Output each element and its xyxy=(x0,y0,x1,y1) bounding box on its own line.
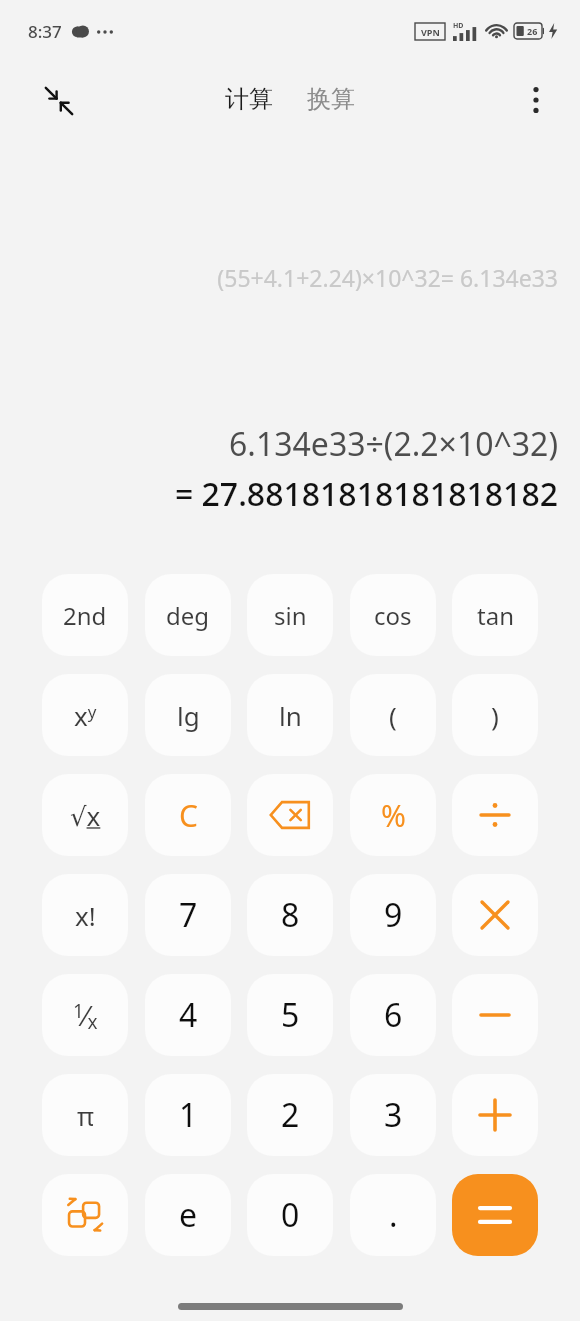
staticText: 换算 xyxy=(307,84,355,114)
staticText: . xyxy=(389,1193,398,1237)
staticText: 6 xyxy=(384,993,403,1037)
button[interactable] xyxy=(452,1174,538,1256)
button[interactable]: 2 xyxy=(247,1074,333,1156)
button[interactable]: 0 xyxy=(247,1174,333,1256)
staticText: ) xyxy=(491,698,499,733)
staticText: 1 xyxy=(179,1093,198,1137)
button[interactable] xyxy=(452,774,538,856)
staticText: VPN xyxy=(421,26,440,38)
staticText: deg xyxy=(166,599,210,632)
button[interactable]: e xyxy=(145,1174,231,1256)
staticText: x! xyxy=(75,898,96,933)
button[interactable]: sin xyxy=(247,574,333,656)
button[interactable]: 6 xyxy=(350,974,436,1056)
button[interactable]: 4 xyxy=(145,974,231,1056)
staticText: √x xyxy=(70,798,101,833)
button[interactable]: x! xyxy=(42,874,128,956)
button[interactable]: Convert xyxy=(42,1174,128,1256)
staticText: ( xyxy=(389,698,397,733)
staticText: sin xyxy=(274,599,307,632)
button[interactable] xyxy=(452,874,538,956)
staticText: 8:37 xyxy=(28,20,62,43)
staticText: 2nd xyxy=(63,599,107,632)
staticText: 6.134e33÷(2.2×10^32) xyxy=(229,422,558,466)
button[interactable]: tan xyxy=(452,574,538,656)
button[interactable]: 1 xyxy=(145,1074,231,1156)
staticText: 2 xyxy=(281,1093,300,1137)
staticText: (55+4.1+2.24)×10^32= 6.134e33 xyxy=(217,262,558,293)
button[interactable]: 9 xyxy=(350,874,436,956)
staticText: tan xyxy=(477,599,514,632)
button[interactable]: deg xyxy=(145,574,231,656)
staticText: 7 xyxy=(179,893,198,937)
button[interactable] xyxy=(452,974,538,1056)
button[interactable]: 1⁄x xyxy=(42,974,128,1056)
staticText: π xyxy=(77,1098,94,1133)
button[interactable]: 计算 xyxy=(219,78,279,120)
button[interactable]: π xyxy=(42,1074,128,1156)
button[interactable]: xy xyxy=(42,674,128,756)
button[interactable] xyxy=(452,1074,538,1156)
button[interactable]: 2nd xyxy=(42,574,128,656)
staticText: xy xyxy=(74,698,97,733)
staticText: 1⁄x xyxy=(73,996,98,1035)
button[interactable]: Collapse xyxy=(30,72,88,130)
button[interactable]: cos xyxy=(350,574,436,656)
button[interactable]: Backspace xyxy=(247,774,333,856)
staticText: e xyxy=(179,1193,198,1237)
staticText: 26 xyxy=(527,25,538,37)
button[interactable]: 3 xyxy=(350,1074,436,1156)
staticText: 0 xyxy=(281,1193,300,1237)
staticText: 5 xyxy=(281,993,300,1037)
button[interactable]: More options xyxy=(508,72,564,128)
button[interactable]: 换算 xyxy=(301,78,361,120)
staticText: 3 xyxy=(384,1093,403,1137)
staticText: HD xyxy=(453,21,464,31)
button[interactable]: ( xyxy=(350,674,436,756)
staticText: C xyxy=(179,795,198,836)
button[interactable]: 7 xyxy=(145,874,231,956)
staticText: 9 xyxy=(384,893,403,937)
staticText: ln xyxy=(279,698,302,733)
staticText: 4 xyxy=(179,993,198,1037)
staticText: 计算 xyxy=(225,84,273,114)
button[interactable]: % xyxy=(350,774,436,856)
button[interactable]: . xyxy=(350,1174,436,1256)
button[interactable]: 5 xyxy=(247,974,333,1056)
button[interactable]: C xyxy=(145,774,231,856)
staticText: % xyxy=(381,795,406,836)
button[interactable]: ) xyxy=(452,674,538,756)
staticText: = 27.88181818181818182 xyxy=(174,472,558,516)
staticText: 8 xyxy=(281,893,300,937)
staticText: lg xyxy=(177,698,200,733)
button[interactable]: ln xyxy=(247,674,333,756)
button[interactable]: √x xyxy=(42,774,128,856)
button[interactable]: 8 xyxy=(247,874,333,956)
staticText: cos xyxy=(374,599,412,632)
button[interactable]: lg xyxy=(145,674,231,756)
